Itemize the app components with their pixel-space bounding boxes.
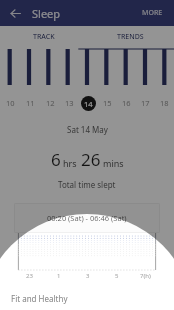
staticText: 5 xyxy=(115,272,119,280)
button[interactable]: 18 xyxy=(155,93,174,113)
button[interactable]: Back xyxy=(6,4,24,22)
staticText: 15 xyxy=(103,98,112,108)
button[interactable] xyxy=(0,47,174,93)
button[interactable]: 17 xyxy=(136,93,155,113)
staticText: 16 xyxy=(122,98,131,108)
staticText: MORE xyxy=(142,8,163,18)
button[interactable]: 15 xyxy=(98,93,117,113)
staticText: 11 xyxy=(26,98,35,108)
staticText: 3 xyxy=(86,272,90,280)
staticText: Total time slept xyxy=(58,179,116,190)
button[interactable]: TRACK xyxy=(0,26,87,47)
button[interactable]: 11 xyxy=(20,93,40,113)
staticText: Fit and Healthy xyxy=(11,293,68,304)
staticText: mins xyxy=(103,157,124,169)
staticText: TRACK xyxy=(33,32,55,42)
button[interactable]: 13 xyxy=(60,93,79,113)
staticText: TRENDS xyxy=(117,32,144,42)
staticText: Sleep xyxy=(32,6,61,21)
button[interactable]: 14 xyxy=(79,93,98,113)
staticText: 1 xyxy=(57,272,61,280)
button[interactable]: MORE xyxy=(139,3,166,23)
staticText: 23 xyxy=(26,272,33,280)
button[interactable]: 00:20 (Sat) - 06:46 (Sat) xyxy=(14,203,160,233)
staticText: 00:20 (Sat) - 06:46 (Sat) xyxy=(47,213,127,223)
staticText: hrs xyxy=(63,157,77,169)
staticText: 13 xyxy=(65,98,74,108)
staticText: 7(h) xyxy=(140,272,151,280)
staticText: 14 xyxy=(84,99,93,109)
button[interactable]: 10 xyxy=(0,93,20,113)
staticText: 10 xyxy=(6,98,15,108)
button[interactable]: TRENDS xyxy=(87,26,174,47)
staticText: 12 xyxy=(46,98,55,108)
staticText: 17 xyxy=(141,98,150,108)
button[interactable]: 12 xyxy=(40,93,60,113)
staticText: 6 xyxy=(51,148,61,171)
staticText: 26 xyxy=(81,148,101,171)
staticText: 18 xyxy=(160,98,169,108)
staticText: Sat 14 May xyxy=(67,124,108,135)
button[interactable]: 16 xyxy=(117,93,136,113)
